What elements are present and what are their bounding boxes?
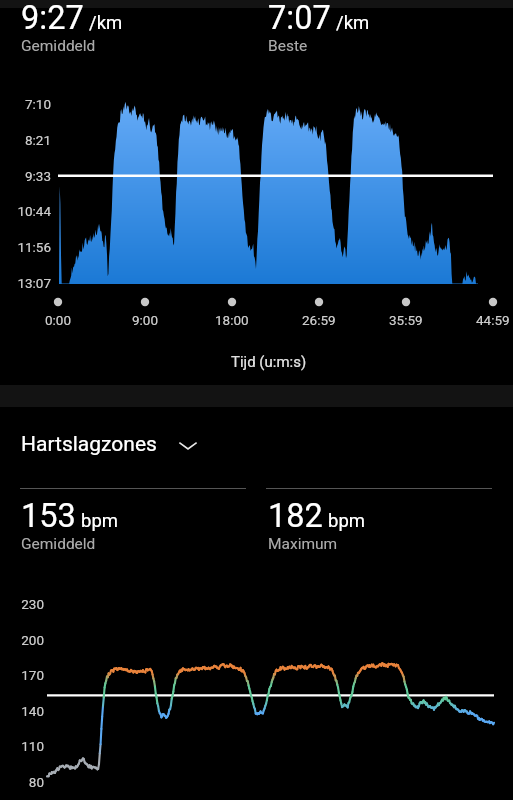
staticText: /km (89, 12, 123, 34)
staticText: 7:07 (268, 0, 331, 37)
staticText: 9:00 (132, 312, 159, 328)
staticText: 8:21 (0, 132, 51, 148)
staticText: 110 (0, 738, 44, 754)
staticText: 11:56 (0, 239, 51, 255)
staticText: bpm (81, 510, 118, 532)
staticText: 18:00 (215, 312, 249, 328)
staticText: 200 (0, 632, 44, 648)
staticText: /km (336, 12, 370, 34)
staticText: 80 (0, 774, 44, 790)
button[interactable]: Hartslagzones (21, 432, 200, 457)
staticText: 153 (21, 497, 76, 535)
staticText: Gemiddeld (21, 37, 96, 55)
other: Uitvouwen (176, 433, 200, 457)
staticText: Maximum (268, 535, 338, 553)
staticText: 10:44 (0, 203, 51, 219)
staticText: 170 (0, 667, 44, 683)
staticText: 44:59 (476, 312, 510, 328)
staticText: 26:59 (302, 312, 336, 328)
staticText: 140 (0, 703, 44, 719)
staticText: 0:00 (45, 312, 72, 328)
staticText: Hartslagzones (21, 432, 157, 457)
staticText: Beste (268, 37, 308, 55)
staticText: 230 (0, 596, 44, 612)
staticText: 182 (268, 497, 323, 535)
staticText: 35:59 (389, 312, 423, 328)
staticText: bpm (328, 510, 365, 532)
staticText: Tijd (u:m:s) (231, 353, 307, 371)
staticText: 9:27 (21, 0, 84, 37)
staticText: 9:33 (0, 168, 51, 184)
staticText: 13:07 (0, 275, 51, 291)
staticText: Gemiddeld (21, 535, 96, 553)
staticText: 7:10 (0, 96, 51, 112)
